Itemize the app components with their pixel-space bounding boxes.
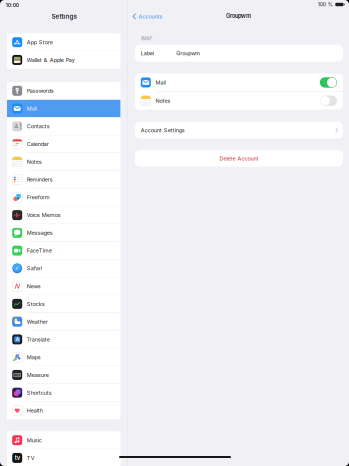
button[interactable]: Reminders	[7, 171, 120, 188]
staticText: TV	[27, 455, 35, 461]
staticText: Safari	[27, 265, 42, 272]
staticText: IMAP	[141, 36, 152, 41]
staticText: Voice Memos	[27, 212, 61, 218]
staticText: tv	[15, 454, 20, 461]
staticText: Music	[27, 437, 42, 443]
button[interactable]: Contacts	[7, 118, 120, 135]
button[interactable]: Weather	[7, 313, 120, 330]
staticText: Groupwm	[226, 13, 251, 19]
button[interactable]: Notes	[7, 153, 120, 170]
staticText: Weather	[27, 318, 48, 325]
button[interactable]: Mail	[7, 100, 120, 117]
button[interactable]: Calendar	[7, 135, 120, 153]
staticText: Contacts	[27, 123, 50, 130]
staticText: Measure	[27, 372, 49, 378]
staticText: News	[27, 283, 41, 289]
staticText: Health	[27, 407, 43, 414]
button[interactable]: News	[7, 277, 120, 295]
button[interactable]: Accounts	[133, 10, 169, 22]
staticText: Calendar	[27, 141, 49, 147]
staticText: 100 %	[318, 1, 333, 7]
staticText: Freeform	[27, 194, 50, 201]
button[interactable]: Health	[7, 402, 120, 419]
staticText: Settings	[51, 13, 76, 20]
button[interactable]: Safari	[7, 260, 120, 277]
staticText: App Store	[27, 39, 53, 45]
staticText: 10:00	[6, 2, 19, 8]
staticText: Mail	[155, 79, 165, 86]
button[interactable]: Delete Account	[135, 150, 343, 167]
button[interactable]: Notes	[320, 95, 337, 106]
staticText: Notes	[27, 158, 42, 165]
button[interactable]: Maps	[7, 348, 120, 366]
button[interactable]: Music	[7, 431, 120, 449]
button[interactable]: Voice Memos	[7, 206, 120, 224]
staticText: Accounts	[138, 13, 162, 20]
button[interactable]: App Store	[7, 33, 120, 51]
button[interactable]: FaceTime	[7, 242, 120, 259]
staticText: Account Settings	[141, 127, 185, 133]
staticText: FaceTime	[27, 247, 52, 254]
button[interactable]: Shortcuts	[7, 384, 120, 401]
button[interactable]: Wallet & Apple Pay	[7, 51, 120, 69]
staticText: Messages	[27, 230, 53, 236]
staticText: Reminders	[27, 176, 53, 183]
staticText: Translate	[27, 336, 50, 343]
staticText: Wallet & Apple Pay	[27, 57, 75, 63]
button[interactable]: tv	[7, 449, 120, 466]
button[interactable]: Stocks	[7, 295, 120, 313]
button[interactable]: Mail	[320, 77, 337, 88]
staticText: A	[16, 337, 19, 342]
button[interactable]: Account Settings	[135, 122, 343, 138]
button[interactable]: A	[7, 331, 120, 348]
staticText: Mail	[27, 105, 37, 112]
staticText: Delete Account	[219, 155, 258, 162]
staticText: Passwords	[27, 87, 54, 94]
button[interactable]: Passwords	[7, 82, 120, 99]
button[interactable]: Freeform	[7, 189, 120, 206]
staticText: Label	[141, 50, 154, 56]
staticText: Shortcuts	[27, 389, 52, 396]
staticText: Stocks	[27, 301, 45, 307]
staticText: Groupwm	[176, 50, 200, 56]
staticText: Notes	[155, 97, 170, 104]
staticText: Maps	[27, 354, 41, 360]
button[interactable]: Messages	[7, 224, 120, 242]
button[interactable]: Measure	[7, 366, 120, 384]
